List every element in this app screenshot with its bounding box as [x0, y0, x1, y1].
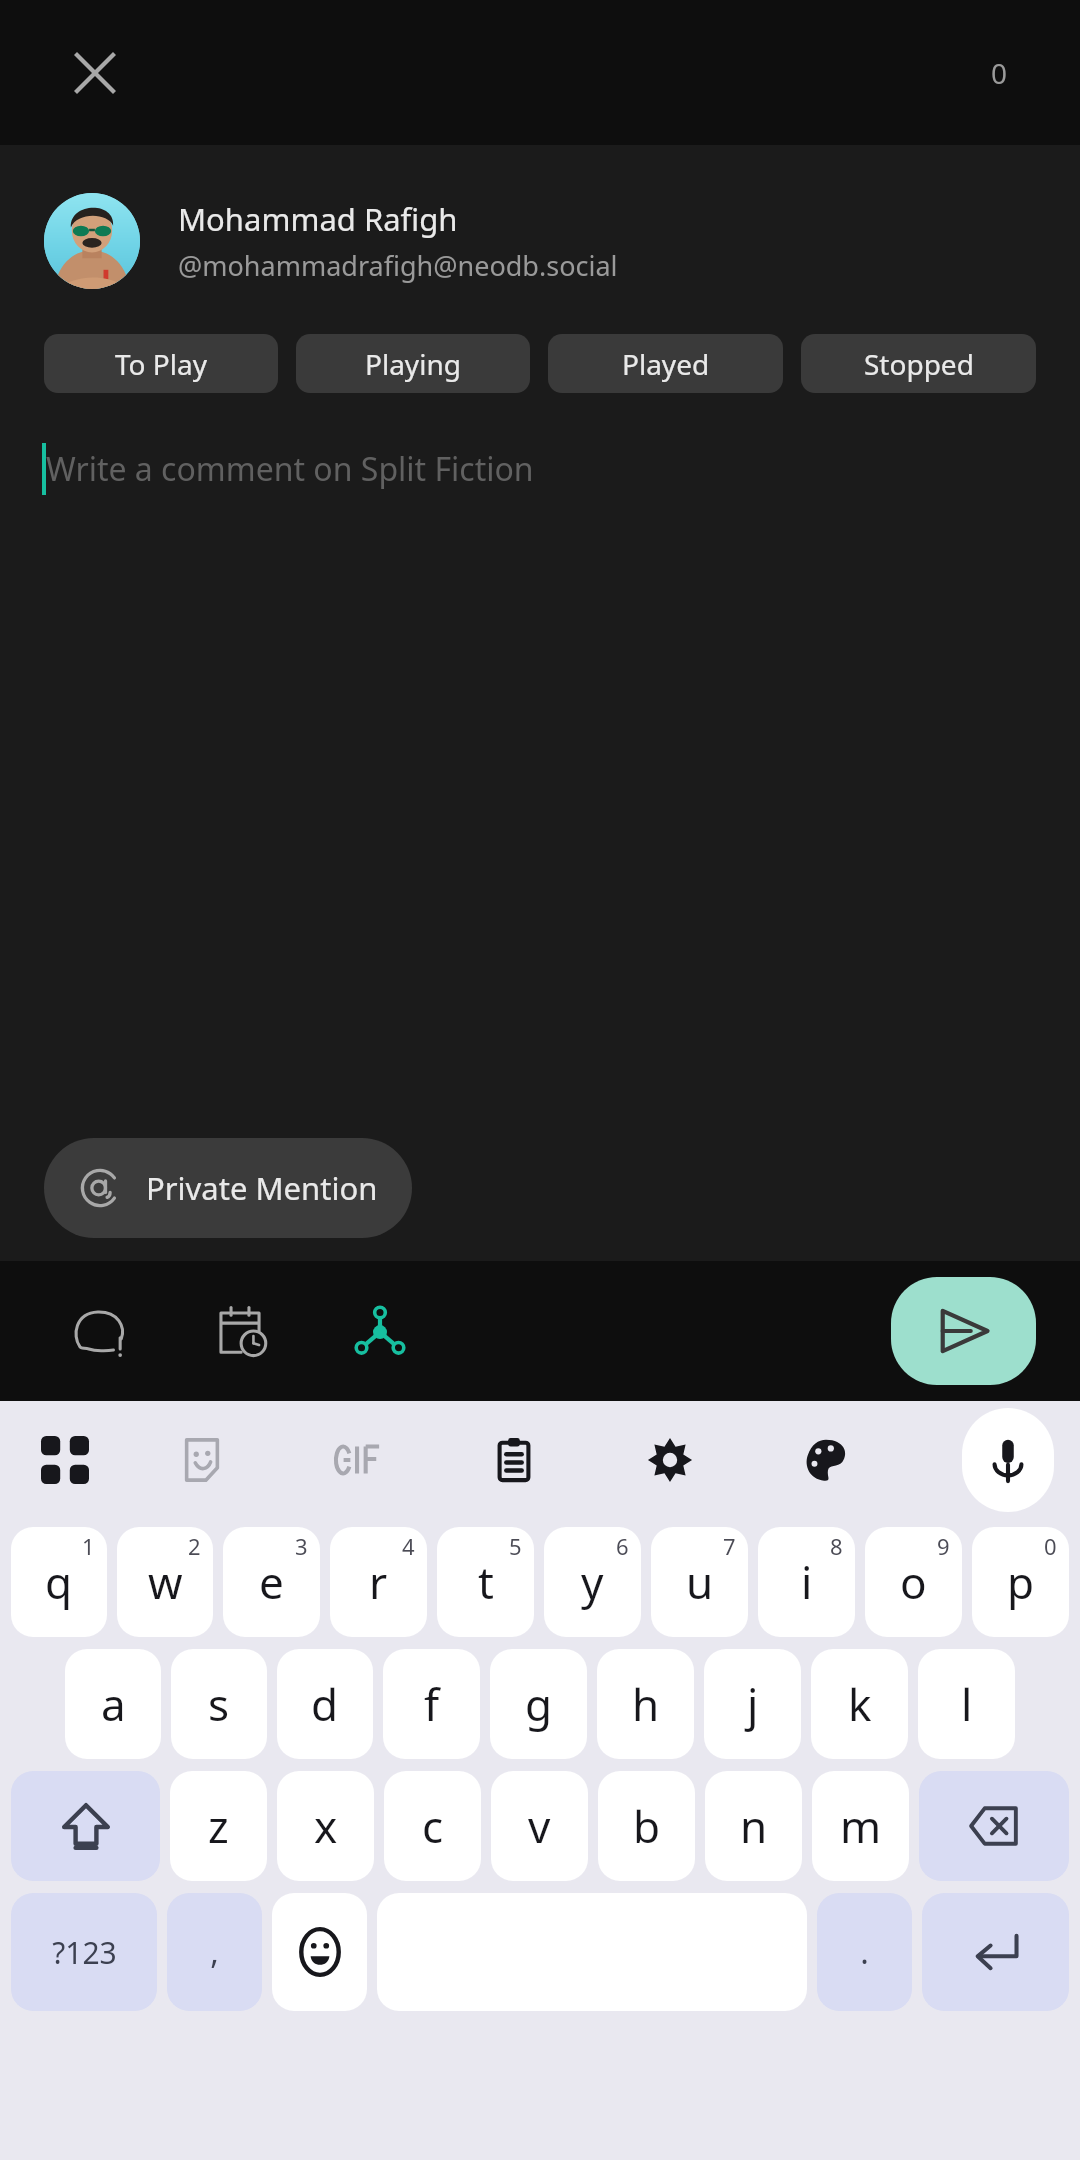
button[interactable]: Keyboard menu	[22, 1417, 108, 1503]
button[interactable]: o	[865, 1527, 962, 1637]
staticText: d	[311, 1674, 339, 1734]
button[interactable]: n	[705, 1771, 802, 1881]
button[interactable]: a	[65, 1649, 161, 1759]
button[interactable]: Clipboard	[472, 1418, 556, 1502]
staticText: q	[45, 1552, 73, 1612]
button[interactable]: j	[704, 1649, 801, 1759]
button[interactable]: i	[758, 1527, 855, 1637]
staticText: @mohammadrafigh@neodb.social	[178, 247, 618, 284]
button[interactable]: l	[918, 1649, 1015, 1759]
staticText: a	[101, 1674, 126, 1734]
button[interactable]: Private Mention	[44, 1138, 412, 1238]
staticText: .	[860, 1930, 869, 1974]
button[interactable]: .	[817, 1893, 912, 2011]
staticText: 0	[991, 54, 1008, 92]
button[interactable]: t	[437, 1527, 534, 1637]
button[interactable]: v	[491, 1771, 588, 1881]
button[interactable]: y	[544, 1527, 641, 1637]
staticText: s	[208, 1674, 230, 1734]
staticText: 4	[402, 1531, 415, 1561]
staticText: 8	[830, 1531, 843, 1561]
button[interactable]: Emoji	[272, 1893, 367, 2011]
staticText: Stopped	[864, 345, 974, 383]
button[interactable]: Close	[52, 30, 138, 116]
staticText: w	[148, 1552, 183, 1612]
staticText: y	[581, 1552, 604, 1612]
staticText: r	[369, 1552, 388, 1612]
staticText: o	[900, 1552, 927, 1612]
staticText: Private Mention	[146, 1167, 378, 1209]
button[interactable]: Send	[891, 1277, 1036, 1385]
staticText: 2	[188, 1531, 201, 1561]
staticText: 7	[723, 1531, 736, 1561]
staticText: p	[1007, 1552, 1035, 1612]
button[interactable]: Profile picture	[44, 193, 140, 289]
button[interactable]: Content warning	[58, 1289, 142, 1373]
button[interactable]: Write a comment on Split Fiction	[42, 438, 1038, 500]
staticText: 3	[295, 1531, 308, 1561]
staticText: 9	[937, 1531, 950, 1561]
staticText: h	[632, 1674, 660, 1734]
staticText: z	[208, 1796, 229, 1856]
staticText: i	[801, 1552, 813, 1612]
staticText: m	[840, 1796, 882, 1856]
staticText: 5	[509, 1531, 522, 1561]
button[interactable]: Playing	[296, 334, 530, 393]
staticText: 6	[616, 1531, 629, 1561]
staticText: v	[528, 1796, 551, 1856]
staticText: b	[633, 1796, 661, 1856]
staticText: Playing	[365, 345, 461, 383]
button[interactable]: Enter	[922, 1893, 1069, 2011]
button[interactable]: Schedule post	[198, 1289, 282, 1373]
button[interactable]: g	[490, 1649, 587, 1759]
button[interactable]: Settings	[628, 1418, 712, 1502]
button[interactable]: GIF	[316, 1418, 400, 1502]
staticText: k	[848, 1674, 872, 1734]
button[interactable]: Backspace	[919, 1771, 1069, 1881]
staticText: f	[424, 1674, 440, 1734]
button[interactable]: k	[811, 1649, 908, 1759]
staticText: l	[961, 1674, 973, 1734]
button[interactable]: q	[11, 1527, 107, 1637]
button[interactable]: f	[383, 1649, 480, 1759]
staticText: c	[422, 1796, 444, 1856]
button[interactable]: r	[330, 1527, 427, 1637]
button[interactable]: w	[117, 1527, 213, 1637]
button[interactable]: z	[170, 1771, 267, 1881]
button[interactable]: Voice input	[962, 1408, 1054, 1512]
staticText: x	[314, 1796, 338, 1856]
staticText: ,	[210, 1930, 219, 1974]
staticText: e	[259, 1552, 284, 1612]
staticText: Mohammad Rafigh	[178, 198, 458, 240]
staticText: Write a comment on Split Fiction	[46, 447, 534, 491]
button[interactable]: Stickers	[160, 1418, 244, 1502]
button[interactable]: h	[597, 1649, 694, 1759]
staticText: 0	[1044, 1531, 1057, 1561]
staticText: u	[686, 1552, 714, 1612]
staticText: n	[740, 1796, 768, 1856]
staticText: j	[747, 1674, 759, 1734]
staticText: To Play	[115, 345, 207, 383]
button[interactable]: ?123	[11, 1893, 157, 2011]
button[interactable]: u	[651, 1527, 748, 1637]
button[interactable]: d	[277, 1649, 373, 1759]
button[interactable]: c	[384, 1771, 481, 1881]
button[interactable]: ,	[167, 1893, 262, 2011]
button[interactable]: x	[277, 1771, 374, 1881]
button[interactable]: To Play	[44, 334, 278, 393]
button[interactable]: p	[972, 1527, 1069, 1637]
button[interactable]: m	[812, 1771, 909, 1881]
staticText: 1	[82, 1531, 95, 1561]
button[interactable]: Visibility	[338, 1289, 422, 1373]
button[interactable]: Stopped	[801, 334, 1036, 393]
button[interactable]: b	[598, 1771, 695, 1881]
button[interactable]: Shift	[11, 1771, 160, 1881]
button[interactable]: Theme	[784, 1418, 868, 1502]
staticText: ?123	[52, 1932, 117, 1973]
staticText: g	[525, 1674, 553, 1734]
staticText: t	[478, 1552, 494, 1612]
button[interactable]: Played	[548, 334, 783, 393]
button[interactable]: s	[171, 1649, 267, 1759]
button[interactable]: e	[223, 1527, 320, 1637]
